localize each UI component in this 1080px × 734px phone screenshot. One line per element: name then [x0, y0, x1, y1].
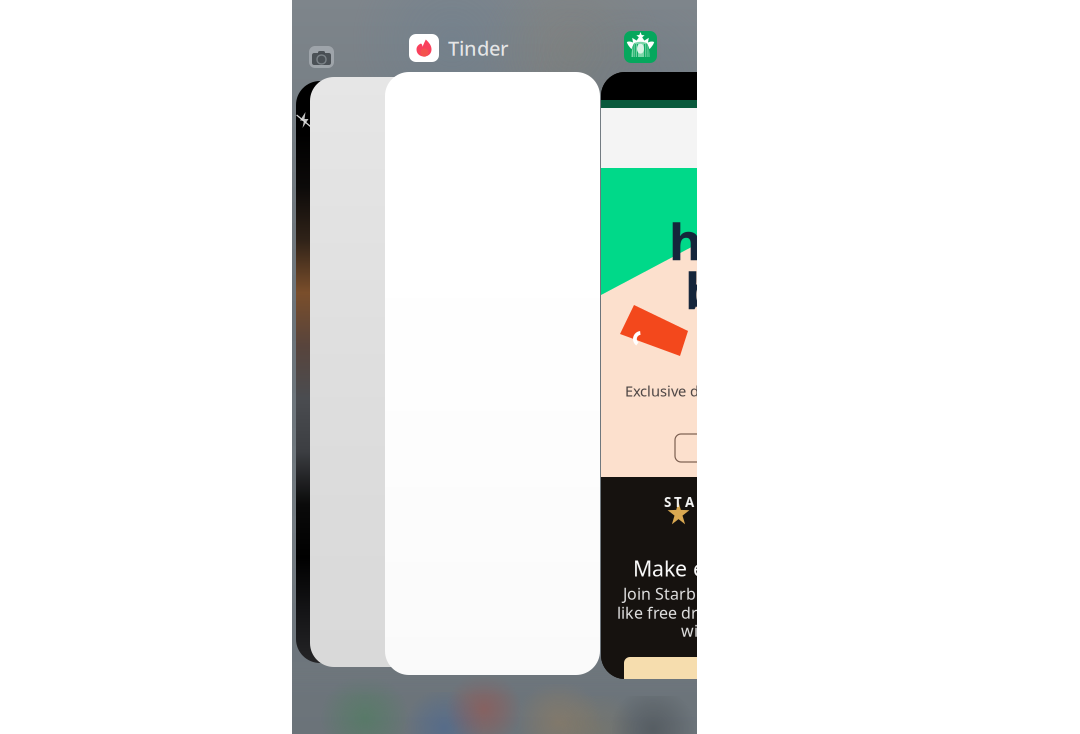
- staticText: with: [681, 620, 714, 641]
- button[interactable]: Join now: [624, 657, 794, 695]
- staticText: Make eve: [633, 554, 728, 582]
- staticText: bu: [685, 256, 750, 323]
- button[interactable]: App card: [310, 77, 525, 667]
- staticText: Join Starbucks R: [623, 583, 745, 604]
- staticText: Exclusive deals &: [625, 381, 741, 400]
- staticText: S T A R B: [664, 493, 718, 511]
- button[interactable]: Starbucks app card: [601, 72, 816, 679]
- button[interactable]: Starbucks: [624, 31, 657, 63]
- staticText: like free drinks an: [617, 602, 752, 623]
- button[interactable]: Camera: [309, 46, 334, 68]
- staticText: ha: [669, 207, 732, 274]
- button[interactable]: Tinder app card: [385, 72, 600, 675]
- button[interactable]: Tinder: [409, 34, 508, 62]
- staticText: Tinder: [448, 35, 508, 61]
- button[interactable]: Camera app card: [296, 81, 496, 663]
